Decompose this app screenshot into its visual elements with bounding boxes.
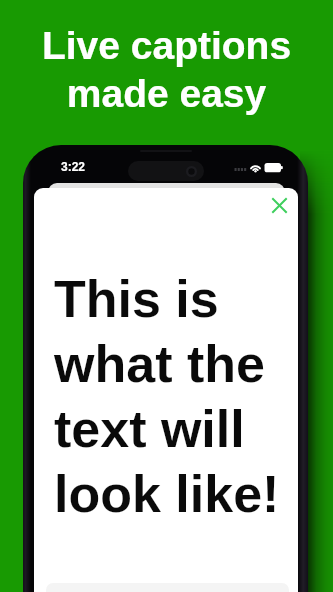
staticText: This is what the text will look like! [54, 270, 280, 523]
staticText: Live captions made easy [0, 24, 333, 115]
button[interactable]: Close [262, 188, 297, 223]
staticText: 3:22 [61, 160, 86, 173]
